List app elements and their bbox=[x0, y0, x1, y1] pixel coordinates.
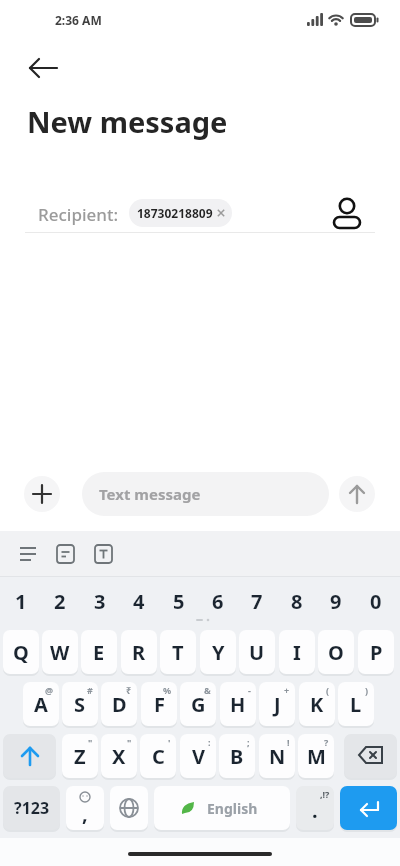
staticText: ! bbox=[287, 736, 290, 748]
staticText: C bbox=[152, 743, 165, 770]
button[interactable] bbox=[110, 786, 148, 830]
staticText: ) bbox=[365, 684, 369, 696]
staticText: " bbox=[127, 736, 132, 748]
button[interactable]: 6 bbox=[200, 580, 236, 622]
button[interactable] bbox=[339, 476, 375, 512]
button[interactable] bbox=[14, 545, 42, 563]
staticText: + bbox=[284, 684, 290, 696]
button[interactable]: 9 bbox=[318, 580, 354, 622]
button[interactable]: ! bbox=[259, 734, 295, 778]
staticText: E bbox=[93, 639, 105, 666]
button[interactable] bbox=[330, 196, 364, 230]
button[interactable]: ,!? bbox=[296, 786, 334, 830]
staticText: ₹ bbox=[126, 684, 132, 696]
button[interactable] bbox=[24, 476, 60, 512]
staticText: T bbox=[172, 639, 184, 666]
staticText: ? bbox=[324, 736, 329, 748]
button[interactable]: U bbox=[239, 630, 275, 674]
button[interactable]: ; bbox=[219, 734, 255, 778]
staticText: . bbox=[312, 797, 318, 824]
staticText: & bbox=[204, 684, 211, 696]
button[interactable] bbox=[340, 786, 397, 830]
button[interactable]: ₹ bbox=[101, 682, 137, 726]
staticText: 2 bbox=[54, 588, 66, 615]
staticText: Recipient: bbox=[38, 203, 119, 226]
button[interactable]: " bbox=[101, 734, 137, 778]
button[interactable]: 5 bbox=[161, 580, 197, 622]
staticText: S bbox=[74, 691, 86, 718]
staticText: " bbox=[88, 736, 93, 748]
staticText: @ bbox=[45, 684, 54, 696]
button[interactable]: # bbox=[62, 682, 98, 726]
staticText: B bbox=[230, 743, 244, 770]
staticText: H bbox=[230, 691, 246, 718]
staticText: ; bbox=[247, 736, 250, 748]
staticText: P bbox=[370, 639, 383, 666]
button[interactable]: E bbox=[81, 630, 117, 674]
button[interactable]: Q bbox=[3, 630, 39, 674]
staticText: ,!? bbox=[320, 788, 330, 800]
staticText: , bbox=[82, 800, 88, 827]
button[interactable]: ?123 bbox=[3, 786, 60, 830]
staticText: Y bbox=[212, 639, 225, 666]
button[interactable]: 18730218809 bbox=[129, 199, 232, 227]
staticText: 5 bbox=[173, 588, 185, 615]
staticText: ( bbox=[326, 684, 330, 696]
button[interactable]: English bbox=[154, 786, 290, 830]
staticText: 4 bbox=[133, 588, 145, 615]
button[interactable]: I bbox=[279, 630, 315, 674]
button[interactable]: 4 bbox=[121, 580, 157, 622]
button[interactable]: Y bbox=[200, 630, 236, 674]
staticText: J bbox=[274, 691, 281, 718]
staticText: 6 bbox=[212, 588, 224, 615]
button[interactable]: 0 bbox=[358, 580, 394, 622]
staticText: 1 bbox=[15, 588, 27, 615]
staticText: X bbox=[112, 743, 126, 770]
button[interactable]: 7 bbox=[239, 580, 275, 622]
staticText: Z bbox=[74, 743, 86, 770]
button[interactable]: 1 bbox=[3, 580, 39, 622]
button[interactable]: + bbox=[259, 682, 295, 726]
button[interactable]: & bbox=[180, 682, 216, 726]
button[interactable]: O bbox=[318, 630, 354, 674]
button[interactable]: : bbox=[180, 734, 216, 778]
button[interactable]: ? bbox=[298, 734, 334, 778]
button[interactable] bbox=[56, 544, 76, 564]
staticText: New message bbox=[27, 102, 228, 141]
staticText: % bbox=[163, 684, 172, 696]
staticText: W bbox=[50, 639, 70, 666]
button[interactable]: ( bbox=[299, 682, 335, 726]
staticText: U bbox=[249, 639, 265, 666]
button[interactable]: ' bbox=[140, 734, 176, 778]
button[interactable] bbox=[18, 50, 58, 86]
button[interactable]: 8 bbox=[279, 580, 315, 622]
staticText: V bbox=[192, 743, 205, 770]
staticText: A bbox=[34, 691, 48, 718]
button[interactable]: , bbox=[66, 786, 104, 830]
button[interactable]: % bbox=[141, 682, 177, 726]
staticText: O bbox=[328, 639, 344, 666]
button[interactable]: W bbox=[42, 630, 78, 674]
button[interactable] bbox=[94, 544, 114, 564]
button[interactable]: 2 bbox=[42, 580, 78, 622]
staticText: ?123 bbox=[14, 797, 50, 819]
staticText: R bbox=[132, 639, 146, 666]
button[interactable]: T bbox=[160, 630, 196, 674]
button[interactable] bbox=[3, 734, 56, 778]
staticText: 9 bbox=[330, 588, 342, 615]
staticText: D bbox=[112, 691, 127, 718]
button[interactable]: Text message bbox=[82, 472, 329, 516]
button[interactable]: " bbox=[62, 734, 98, 778]
button[interactable] bbox=[344, 734, 397, 778]
staticText: N bbox=[269, 743, 286, 770]
button[interactable]: P bbox=[358, 630, 394, 674]
button[interactable]: - bbox=[220, 682, 256, 726]
button[interactable]: 3 bbox=[82, 580, 118, 622]
staticText: 3 bbox=[94, 588, 106, 615]
staticText: Text message bbox=[99, 484, 201, 504]
staticText: 2:36 AM bbox=[55, 12, 102, 28]
staticText: : bbox=[208, 736, 211, 748]
button[interactable]: R bbox=[121, 630, 157, 674]
button[interactable]: @ bbox=[23, 682, 59, 726]
button[interactable]: ) bbox=[338, 682, 374, 726]
